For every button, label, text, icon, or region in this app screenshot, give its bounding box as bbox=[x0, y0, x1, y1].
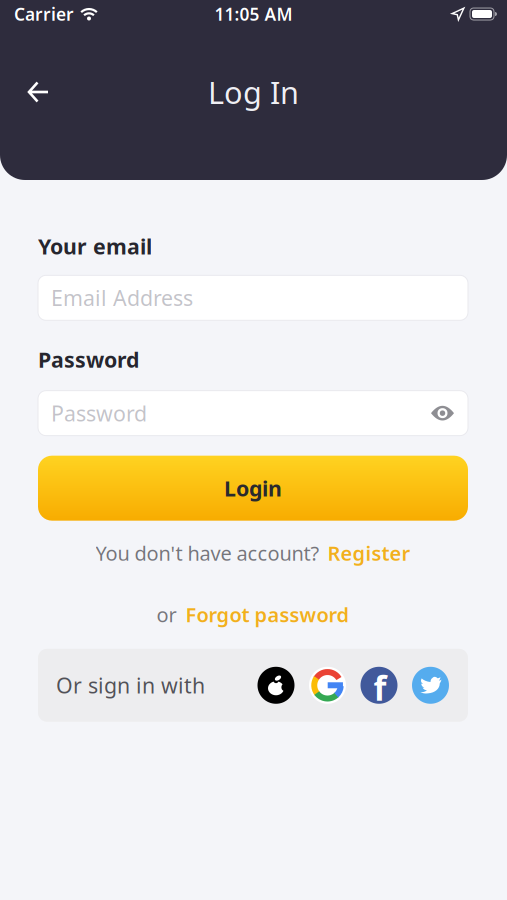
button[interactable]: Forgot password bbox=[185, 601, 349, 628]
button[interactable]: Sign in with Google bbox=[309, 667, 346, 704]
button[interactable]: Back bbox=[0, 73, 49, 110]
staticText: 11:05 AM bbox=[214, 2, 292, 25]
staticText: Email Address bbox=[51, 284, 193, 312]
staticText: Forgot password bbox=[185, 601, 349, 628]
button[interactable]: Sign in with Twitter bbox=[412, 667, 449, 704]
button[interactable]: Login bbox=[38, 456, 468, 521]
staticText: Password bbox=[51, 399, 147, 427]
staticText: f bbox=[373, 666, 386, 710]
staticText: Login bbox=[224, 474, 282, 502]
staticText: You don't have account? bbox=[95, 540, 319, 566]
staticText: Password bbox=[38, 345, 139, 374]
staticText: or bbox=[156, 601, 176, 628]
staticText: Register bbox=[327, 540, 410, 566]
staticText: Your email bbox=[38, 232, 152, 260]
button[interactable]: Sign in with Apple bbox=[257, 667, 294, 704]
button[interactable]: Register bbox=[327, 540, 410, 566]
staticText: Or sign in with bbox=[56, 671, 205, 699]
button[interactable]: Show password bbox=[431, 406, 454, 420]
staticText: Log In bbox=[208, 72, 299, 112]
button[interactable]: Sign in with Facebook bbox=[360, 667, 397, 704]
staticText: Carrier bbox=[14, 2, 74, 25]
